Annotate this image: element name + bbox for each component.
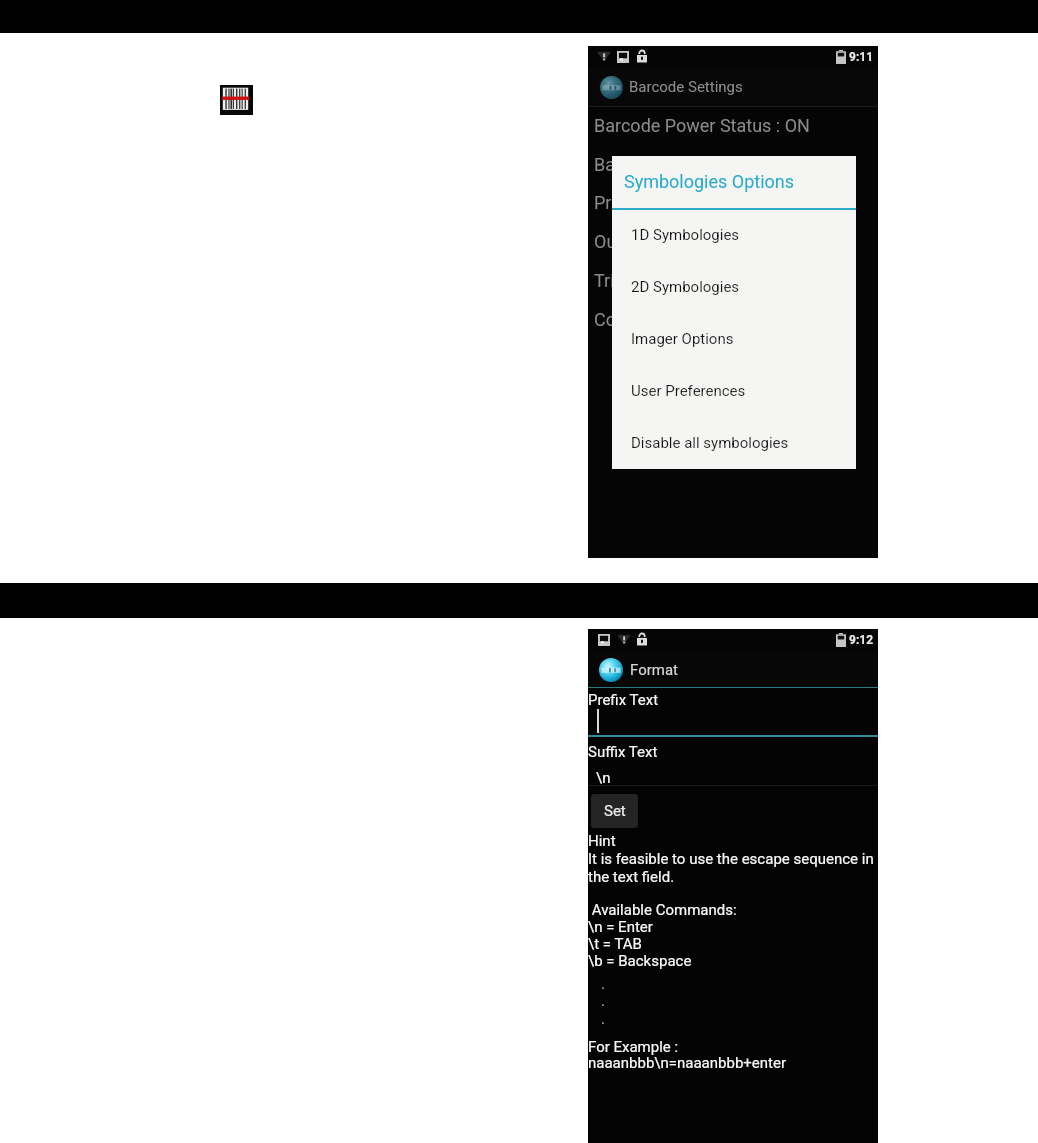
staticText: Profile bbox=[594, 192, 646, 213]
button[interactable]: 2D Symbologies bbox=[631, 265, 856, 309]
staticText: Available Commands: bbox=[588, 901, 737, 919]
staticText: 9:11 bbox=[849, 50, 874, 64]
button[interactable]: App icon bbox=[599, 651, 878, 688]
staticText: \t = TAB bbox=[588, 935, 642, 953]
other: App icon bbox=[600, 76, 623, 99]
other: App icon bbox=[599, 658, 623, 682]
staticText: For Example : bbox=[588, 1038, 679, 1056]
staticText: Hint bbox=[588, 832, 616, 850]
button[interactable]: Profile bbox=[594, 183, 878, 221]
staticText: Format bbox=[630, 661, 678, 679]
button[interactable]: Trigger bbox=[594, 261, 878, 299]
button[interactable]: App icon bbox=[600, 68, 878, 106]
staticText: Symbologies Options bbox=[624, 171, 795, 192]
button[interactable]: Output bbox=[594, 222, 878, 260]
button[interactable]: Control bbox=[594, 300, 878, 338]
staticText: Barcode Settings bbox=[629, 78, 743, 96]
staticText: . bbox=[601, 992, 605, 1010]
staticText: naaanbbb\n=naaanbbb+enter bbox=[588, 1054, 786, 1072]
button[interactable]: Barcode Test bbox=[594, 145, 878, 183]
staticText: Disable all symbologies bbox=[631, 434, 789, 452]
staticText: Trigger bbox=[594, 270, 651, 291]
staticText: 2D Symbologies bbox=[631, 278, 740, 296]
staticText: \n bbox=[596, 769, 611, 787]
button[interactable]: Disable all symbologies bbox=[631, 421, 856, 465]
staticText: Barcode Power Status : ON bbox=[594, 115, 810, 136]
staticText: 9:12 bbox=[849, 633, 874, 647]
other: Barcode scanner icon bbox=[220, 85, 253, 115]
button[interactable]: Imager Options bbox=[631, 317, 856, 361]
staticText: \b = Backspace bbox=[588, 952, 692, 970]
staticText: Prefix Text bbox=[588, 691, 659, 709]
button[interactable]: Barcode Power Status : ON bbox=[594, 106, 878, 144]
staticText: \n = Enter bbox=[588, 918, 653, 936]
staticText: User Preferences bbox=[631, 382, 746, 400]
staticText: Barcode Test bbox=[594, 154, 700, 175]
staticText: Output bbox=[594, 231, 649, 252]
staticText: It is feasible to use the escape sequenc… bbox=[588, 850, 874, 886]
staticText: Set bbox=[604, 802, 626, 820]
staticText: Imager Options bbox=[631, 330, 734, 348]
staticText: . bbox=[601, 1010, 605, 1028]
staticText: Control bbox=[594, 309, 653, 330]
staticText: Suffix Text bbox=[588, 743, 658, 761]
staticText: . bbox=[601, 975, 605, 993]
button[interactable]: Set bbox=[591, 794, 638, 828]
button[interactable]: User Preferences bbox=[631, 369, 856, 413]
button[interactable]: 1D Symbologies bbox=[631, 213, 856, 257]
staticText: 1D Symbologies bbox=[631, 226, 740, 244]
